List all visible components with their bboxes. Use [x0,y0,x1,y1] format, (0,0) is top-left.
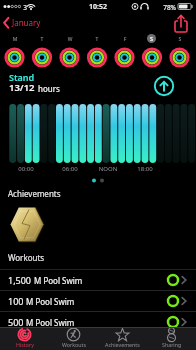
button[interactable]: Sharing [147,327,196,350]
button[interactable] [170,13,192,34]
button[interactable]: History [0,327,49,350]
staticText: Workouts [62,341,86,348]
staticText: History [16,341,34,348]
staticText: January [12,17,62,28]
staticText: 13/12 [9,81,35,94]
staticText: 18:00 [133,165,157,173]
staticText: 3 [21,3,29,12]
staticText: NOON [96,165,120,173]
staticText: 100 [8,295,24,307]
staticText: 06:00 [58,165,82,173]
staticText: M Pool Swim [24,317,75,328]
staticText: T [36,36,48,43]
staticText: 10:52 [86,2,110,12]
staticText: 1,500 [8,274,32,286]
staticText: S [147,35,156,42]
button[interactable]: 100 [0,291,196,311]
staticText: M [9,36,21,43]
button[interactable]: Achievements [0,186,196,248]
button[interactable]: Workouts [49,327,98,350]
staticText: Sharing [162,341,182,348]
button[interactable]: Achievements [98,327,147,350]
button[interactable]: 1,500 [0,270,196,290]
staticText: Workouts [8,252,88,263]
button[interactable] [153,75,175,97]
staticText: W [64,36,76,43]
staticText: Achievements [8,188,108,199]
button[interactable]: 500 [0,312,196,332]
staticText: T [91,36,103,43]
staticText: F [119,36,131,43]
staticText: Achievements [105,341,140,348]
staticText: 78% [158,3,176,12]
button[interactable]: January [0,14,80,32]
staticText: 00:00 [14,165,38,173]
staticText: M Pool Swim [24,296,75,307]
staticText: M Pool Swim [32,275,83,286]
staticText: 500 [8,316,24,328]
staticText: S [174,36,186,43]
staticText: Stand [9,71,69,83]
staticText: hours [38,83,60,94]
